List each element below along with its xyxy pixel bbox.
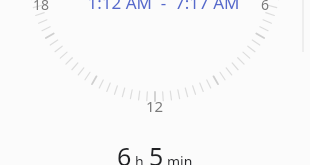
staticText: 5 [149, 139, 164, 165]
staticText: 6 [261, 0, 270, 14]
staticText: min [167, 152, 193, 165]
button[interactable]: 1:12 AM - 7:17 AM [87, 0, 240, 14]
button[interactable]: Sleep schedule dial [0, 0, 310, 165]
button[interactable]: 6 [117, 139, 193, 165]
staticText: 18 [33, 0, 50, 14]
staticText: h [135, 152, 144, 165]
staticText: 1:12 AM - 7:17 AM [87, 0, 240, 14]
staticText: 12 [146, 96, 164, 116]
staticText: 6 [117, 139, 132, 165]
